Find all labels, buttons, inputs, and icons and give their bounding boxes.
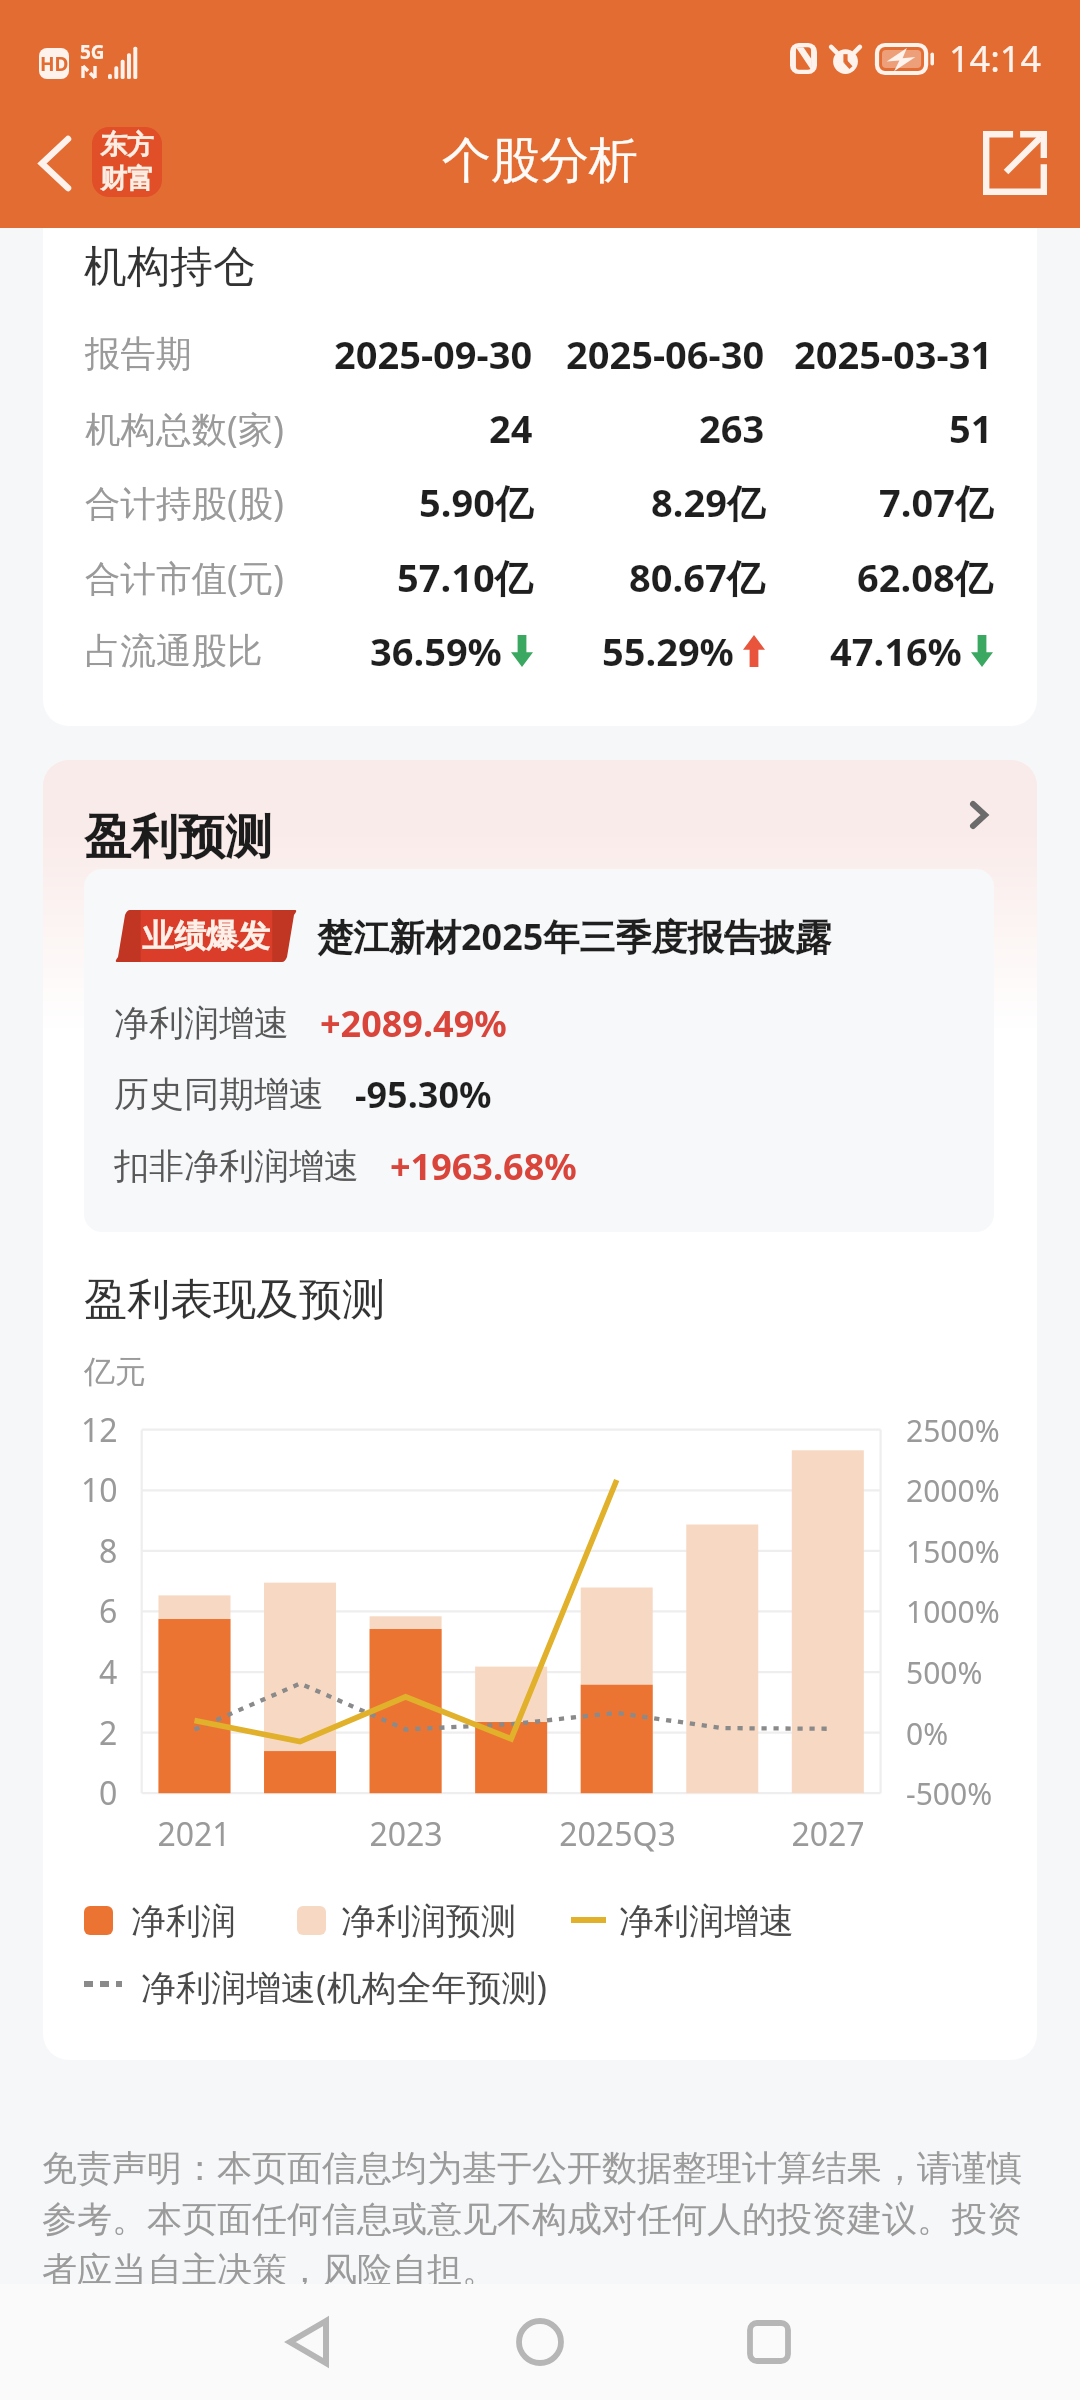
- button[interactable]: Share: [963, 111, 1067, 215]
- staticText: 免责声明：本页面信息均为基于公开数据整理计算结果，请谨慎参考。本页面任何信息或意…: [42, 2146, 1038, 2293]
- staticText: 盈利预测: [84, 808, 272, 867]
- staticText: 62.08亿: [857, 551, 993, 603]
- staticText: 5.90亿: [419, 476, 533, 528]
- staticText: 24: [489, 402, 533, 454]
- button[interactable]: Recents: [709, 2284, 829, 2400]
- staticText: 0: [99, 1771, 118, 1815]
- staticText: 2025-06-30: [566, 328, 765, 380]
- button[interactable]: Home: [480, 2284, 600, 2400]
- staticText: 12: [81, 1408, 118, 1452]
- staticText: 合计市值(元): [85, 553, 284, 601]
- staticText: 历史同期增速: [114, 1072, 324, 1116]
- staticText: 5G: [80, 39, 105, 65]
- staticText: 263: [699, 402, 765, 454]
- staticText: 57.10亿: [397, 551, 533, 603]
- staticText: 财富: [100, 162, 154, 196]
- staticText: 47.16%: [830, 625, 962, 677]
- staticText: 合计持股(股): [85, 478, 284, 526]
- staticText: 36.59%: [370, 625, 502, 677]
- staticText: 净利润: [131, 1899, 236, 1941]
- staticText: 2025Q3: [559, 1812, 676, 1856]
- staticText: 2023: [369, 1812, 443, 1856]
- button[interactable]: Back: [248, 2284, 368, 2400]
- staticText: 1000%: [906, 1591, 1000, 1632]
- staticText: 个股分析: [442, 130, 638, 192]
- button[interactable]: Back: [14, 111, 96, 215]
- staticText: 8.29亿: [651, 476, 765, 528]
- staticText: 净利润预测: [341, 1899, 516, 1941]
- staticText: 机构持仓: [84, 240, 256, 294]
- staticText: +1963.68%: [390, 1142, 577, 1191]
- staticText: 2: [99, 1711, 118, 1755]
- staticText: 2021: [157, 1812, 231, 1856]
- staticText: -500%: [906, 1773, 993, 1814]
- staticText: 4: [99, 1650, 118, 1694]
- staticText: 扣非净利润增速: [114, 1144, 359, 1188]
- staticText: 盈利表现及预测: [84, 1273, 385, 1327]
- staticText: +2089.49%: [320, 999, 507, 1048]
- staticText: 51: [949, 402, 993, 454]
- staticText: 14:14: [949, 34, 1042, 83]
- staticText: 8: [99, 1529, 118, 1573]
- staticText: 10: [81, 1468, 118, 1512]
- staticText: 7.07亿: [879, 476, 993, 528]
- staticText: 净利润增速: [114, 1001, 289, 1045]
- staticText: 500%: [906, 1652, 983, 1693]
- staticText: 亿元: [84, 1352, 146, 1391]
- staticText: 报告期: [85, 332, 192, 377]
- staticText: 2025-03-31: [794, 328, 993, 380]
- staticText: -95.30%: [355, 1070, 492, 1119]
- staticText: 6: [99, 1589, 118, 1633]
- staticText: 净利润增速(机构全年预测): [141, 1963, 548, 2005]
- staticText: 业绩爆发: [142, 916, 270, 956]
- staticText: 2025-09-30: [334, 328, 533, 380]
- staticText: 占流通股比: [85, 629, 263, 674]
- staticText: 机构总数(家): [85, 404, 284, 452]
- staticText: HD: [40, 51, 69, 77]
- staticText: 80.67亿: [629, 551, 765, 603]
- staticText: 0%: [906, 1713, 949, 1754]
- staticText: 2500%: [906, 1410, 1000, 1451]
- staticText: 55.29%: [602, 625, 734, 677]
- staticText: 2000%: [906, 1470, 1000, 1511]
- staticText: 2027: [791, 1812, 865, 1856]
- staticText: 1500%: [906, 1531, 1000, 1572]
- staticText: 楚江新材2025年三季度报告披露: [317, 912, 832, 961]
- staticText: 净利润增速: [619, 1899, 794, 1941]
- staticText: 东方: [100, 128, 154, 162]
- button[interactable]: 盈利预测: [43, 760, 1037, 869]
